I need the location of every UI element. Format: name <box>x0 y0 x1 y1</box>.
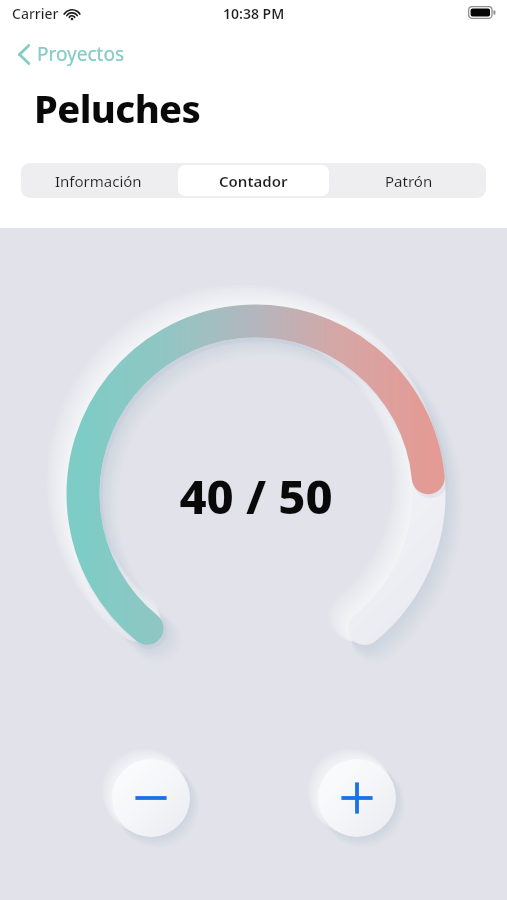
button[interactable]: Decrease <box>112 759 190 837</box>
staticText: Peluches <box>34 82 201 134</box>
staticText: 40 / 50 <box>179 464 333 528</box>
staticText: Contador <box>219 171 288 191</box>
button[interactable]: Información <box>23 165 174 196</box>
staticText: Proyectos <box>37 41 125 67</box>
staticText: Patrón <box>385 171 433 191</box>
button[interactable]: Increase <box>318 759 396 837</box>
button[interactable]: Contador <box>178 165 329 196</box>
button[interactable]: Proyectos <box>13 37 130 71</box>
button[interactable]: Patrón <box>333 165 484 196</box>
staticText: Información <box>55 171 142 191</box>
staticText: Carrier <box>12 4 59 23</box>
staticText: 10:38 PM <box>223 4 285 23</box>
